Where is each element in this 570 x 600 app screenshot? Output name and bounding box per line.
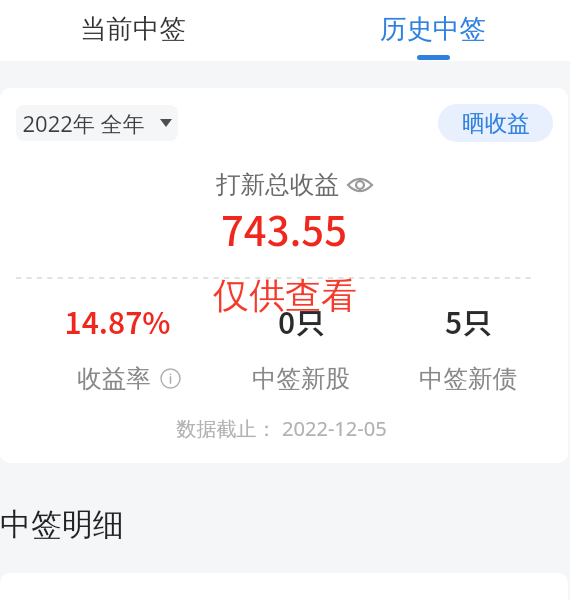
staticText: 743.55 [221, 200, 347, 258]
staticText: 中签新债 [419, 363, 517, 394]
staticText: 0只 [278, 300, 325, 343]
staticText: 打新总收益 [216, 169, 339, 200]
button[interactable]: 历史中签 [283, 0, 570, 61]
button[interactable]: 2022年 全年 [16, 105, 178, 141]
staticText: 5只 [445, 300, 492, 343]
button[interactable]: 0只 [201, 303, 401, 394]
staticText: 当前中签 [80, 12, 186, 45]
staticText: 数据截止： 2022-12-05 [176, 415, 387, 442]
staticText: 历史中签 [380, 12, 486, 45]
staticText: 中签新股 [252, 363, 350, 394]
other: 隐藏收益 [347, 176, 373, 194]
button[interactable]: 当前中签 [0, 0, 283, 61]
button[interactable]: 5只 [368, 303, 568, 394]
staticText: 2022年 全年 [22, 108, 145, 138]
staticText: 收益率 [77, 363, 151, 394]
staticText: 14.87% [64, 300, 171, 343]
staticText: 晒收益 [462, 109, 530, 137]
staticText: 中签明细 [0, 505, 124, 544]
button[interactable]: 14.87% [17, 303, 217, 394]
button[interactable]: 晒收益 [438, 104, 553, 142]
staticText: 仅供查看 [213, 273, 357, 318]
